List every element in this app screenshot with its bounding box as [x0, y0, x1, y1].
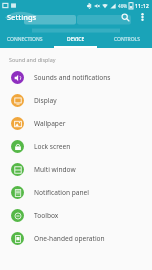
- staticText: CONTROLS: [114, 36, 140, 43]
- staticText: 11:12: [135, 2, 149, 9]
- button[interactable]: Search: [116, 12, 134, 22]
- button[interactable]: DEVICE: [50, 35, 101, 48]
- staticText: One-handed operation: [34, 234, 105, 243]
- staticText: Wallpaper: [34, 119, 66, 128]
- button[interactable]: More options: [134, 12, 150, 22]
- button[interactable]: Display: [0, 89, 152, 112]
- button[interactable]: Sounds and notifications: [0, 66, 152, 89]
- staticText: Sound and display: [9, 56, 56, 63]
- button[interactable]: Wallpaper: [0, 112, 152, 135]
- button[interactable]: Multi window: [0, 158, 152, 181]
- button[interactable]: Lock screen: [0, 135, 152, 158]
- staticText: Notification panel: [34, 188, 90, 197]
- button[interactable]: Toolbox: [0, 204, 152, 227]
- staticText: CONNECTIONS: [7, 36, 43, 43]
- staticText: 46%: [118, 3, 128, 9]
- button[interactable]: One-handed operation: [0, 227, 152, 250]
- button[interactable]: CONTROLS: [101, 35, 152, 48]
- button[interactable]: CONNECTIONS: [0, 35, 50, 48]
- button[interactable]: Notification panel: [0, 181, 152, 204]
- staticText: Display: [34, 96, 57, 105]
- staticText: Toolbox: [34, 211, 59, 220]
- staticText: Sounds and notifications: [34, 73, 111, 82]
- staticText: DEVICE: [67, 36, 85, 43]
- staticText: Multi window: [34, 165, 76, 174]
- staticText: Settings: [7, 12, 37, 22]
- staticText: Lock screen: [34, 142, 71, 151]
